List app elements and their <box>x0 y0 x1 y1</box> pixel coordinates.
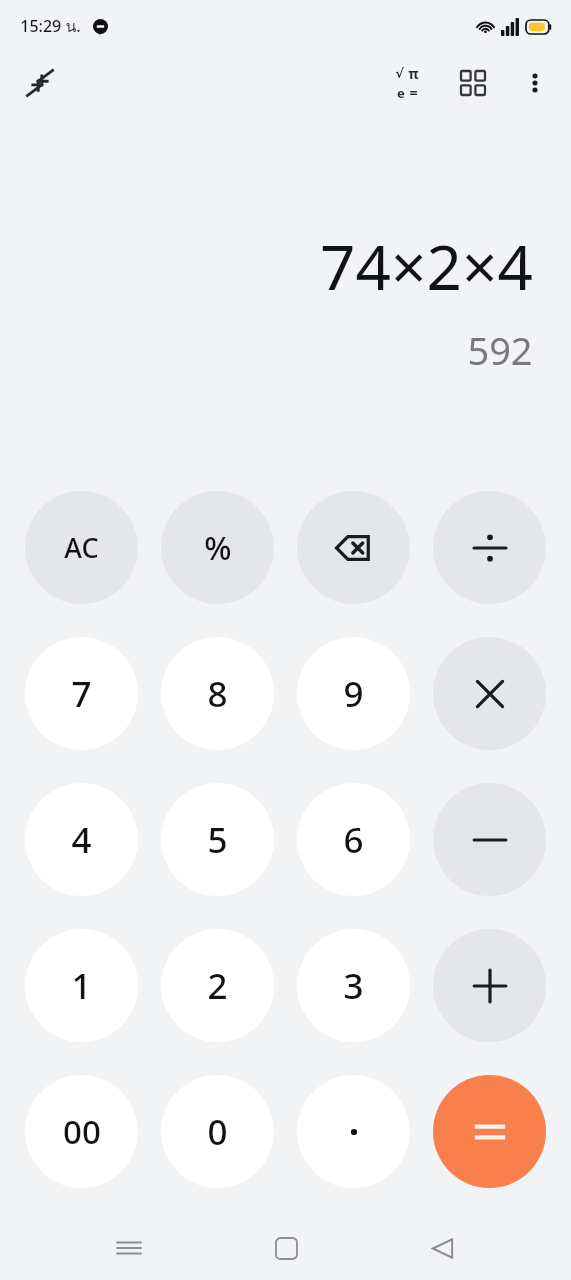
button[interactable]: 0 <box>161 1075 274 1188</box>
button[interactable]: 3 <box>297 929 410 1042</box>
staticText: e <box>397 84 405 102</box>
button[interactable] <box>433 783 546 896</box>
button[interactable]: Backspace <box>297 491 410 604</box>
button[interactable]: 4 <box>25 783 138 896</box>
staticText: 9 <box>343 670 364 718</box>
button[interactable]: 00 <box>25 1075 138 1188</box>
staticText: AC <box>64 529 99 566</box>
staticText: 7 <box>71 670 92 718</box>
button[interactable]: Home <box>258 1220 314 1276</box>
button[interactable]: 8 <box>161 637 274 750</box>
staticText: 4 <box>71 816 92 864</box>
button[interactable]: AC <box>25 491 138 604</box>
button[interactable]: 2 <box>161 929 274 1042</box>
button[interactable]: Scientific <box>381 57 433 109</box>
button[interactable]: History <box>447 57 499 109</box>
staticText: 00 <box>63 1109 101 1154</box>
staticText: 8 <box>207 670 228 718</box>
staticText: 15:29 น. <box>20 14 81 39</box>
button[interactable]: More options <box>509 57 561 109</box>
button[interactable]: 9 <box>297 637 410 750</box>
button[interactable] <box>433 1075 546 1188</box>
button[interactable] <box>433 929 546 1042</box>
staticText: 0 <box>207 1108 228 1156</box>
staticText: 3 <box>343 962 364 1010</box>
button[interactable]: 5 <box>161 783 274 896</box>
staticText: 1 <box>71 962 92 1010</box>
staticText: % <box>204 526 232 570</box>
button[interactable]: Recents <box>101 1220 157 1276</box>
staticText: 5 <box>207 816 228 864</box>
staticText: 592 <box>467 324 533 376</box>
staticText: 2 <box>207 962 228 1010</box>
button[interactable] <box>433 637 546 750</box>
button[interactable]: 7 <box>25 637 138 750</box>
staticText: = <box>409 83 418 102</box>
staticText: √ <box>395 66 404 81</box>
staticText: π <box>408 64 419 83</box>
button[interactable] <box>297 1075 410 1188</box>
button[interactable]: % <box>161 491 274 604</box>
button[interactable]: 6 <box>297 783 410 896</box>
button[interactable]: Collapse <box>14 57 66 109</box>
button[interactable]: Back <box>414 1220 470 1276</box>
staticText: 74×2×4 <box>320 224 533 308</box>
button[interactable]: 1 <box>25 929 138 1042</box>
button[interactable] <box>433 491 546 604</box>
staticText: 6 <box>343 816 364 864</box>
